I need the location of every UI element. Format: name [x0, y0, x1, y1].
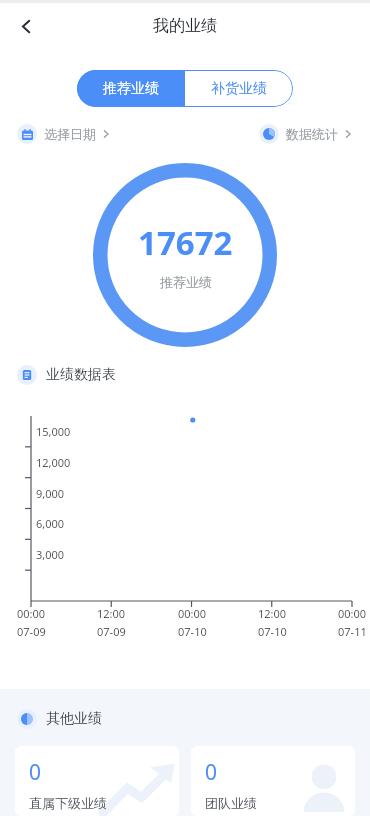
- staticText: 00:00: [17, 606, 46, 621]
- staticText: 07-10: [258, 624, 287, 639]
- button[interactable]: 0: [191, 746, 355, 816]
- staticText: 选择日期: [44, 126, 96, 142]
- staticText: 07-09: [97, 624, 126, 639]
- staticText: 07-10: [178, 624, 207, 639]
- staticText: 推荐业绩: [103, 80, 159, 98]
- staticText: 6,000: [36, 516, 65, 531]
- staticText: 07-09: [17, 624, 46, 639]
- staticText: 12,000: [36, 455, 71, 470]
- staticText: 9,000: [36, 486, 65, 501]
- button[interactable]: Back: [8, 8, 44, 44]
- staticText: 团队业绩: [205, 795, 257, 811]
- staticText: 补货业绩: [211, 80, 267, 98]
- staticText: 07-11: [338, 624, 367, 639]
- staticText: 12:00: [97, 606, 126, 621]
- button[interactable]: 补货业绩: [185, 70, 293, 107]
- staticText: 12:00: [258, 606, 287, 621]
- staticText: 业绩数据表: [46, 366, 116, 384]
- staticText: 17672: [138, 220, 233, 265]
- staticText: 我的业绩: [153, 16, 217, 36]
- staticText: 00:00: [338, 606, 367, 621]
- staticText: 直属下级业绩: [29, 795, 107, 811]
- staticText: 数据统计: [286, 126, 338, 142]
- staticText: 其他业绩: [46, 710, 102, 728]
- staticText: 0: [205, 758, 218, 787]
- button[interactable]: 0: [15, 746, 179, 816]
- staticText: 3,000: [36, 547, 65, 562]
- staticText: 00:00: [178, 606, 207, 621]
- button[interactable]: 数据统计: [259, 122, 353, 146]
- button[interactable]: 选择日期: [17, 122, 111, 146]
- staticText: 0: [29, 758, 42, 787]
- staticText: 15,000: [36, 424, 71, 439]
- button[interactable]: 推荐业绩: [77, 70, 185, 107]
- staticText: 推荐业绩: [160, 274, 212, 290]
